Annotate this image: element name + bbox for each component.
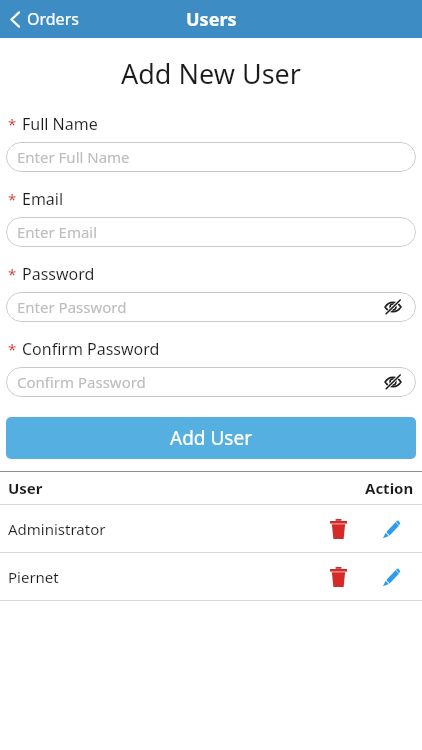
staticText: Enter Full Name xyxy=(17,147,130,167)
staticText: Password xyxy=(22,263,95,285)
button[interactable]: Enter Email xyxy=(6,217,416,247)
button[interactable]: Orders xyxy=(6,4,83,34)
button[interactable]: Edit xyxy=(372,511,408,547)
button[interactable]: Show password xyxy=(382,296,404,318)
staticText: Add New User xyxy=(0,55,422,92)
staticText: * xyxy=(8,189,17,209)
staticText: * xyxy=(8,264,17,284)
staticText: Email xyxy=(22,188,64,210)
button[interactable]: Delete xyxy=(320,511,356,547)
staticText: * xyxy=(8,114,17,134)
staticText: * xyxy=(8,339,17,359)
staticText: Administrator xyxy=(8,519,106,539)
button[interactable]: Piernet xyxy=(0,553,422,600)
staticText: Confirm Password xyxy=(22,338,160,360)
staticText: Add User xyxy=(170,425,253,451)
button[interactable]: Show password xyxy=(382,371,404,393)
button[interactable]: Add User xyxy=(6,417,416,459)
staticText: Piernet xyxy=(8,567,59,587)
staticText: User xyxy=(8,478,43,498)
button[interactable]: Enter Full Name xyxy=(6,142,416,172)
staticText: Full Name xyxy=(22,113,98,135)
staticText: Enter Email xyxy=(17,222,98,242)
staticText: Action xyxy=(365,478,414,498)
button[interactable]: Delete xyxy=(320,559,356,595)
staticText: Confirm Password xyxy=(17,372,146,392)
button[interactable]: Edit xyxy=(372,559,408,595)
staticText: Enter Password xyxy=(17,297,127,317)
staticText: Users xyxy=(186,7,237,32)
button[interactable]: Confirm Password xyxy=(6,367,416,397)
button[interactable]: Administrator xyxy=(0,505,422,552)
button[interactable]: Enter Password xyxy=(6,292,416,322)
staticText: Orders xyxy=(27,8,79,30)
